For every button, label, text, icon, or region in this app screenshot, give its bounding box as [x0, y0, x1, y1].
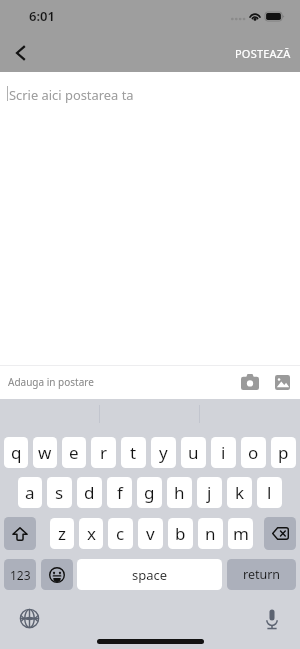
staticText: m	[233, 522, 249, 545]
button[interactable]: l	[257, 477, 282, 508]
staticText: 6:01	[29, 7, 55, 25]
staticText: 123	[10, 567, 31, 583]
staticText: f	[117, 481, 123, 504]
button[interactable]: f	[107, 477, 132, 508]
button[interactable]: Shift	[4, 517, 36, 550]
staticText: return	[243, 566, 281, 583]
staticText: k	[235, 481, 245, 504]
staticText: POSTEAZĂ	[235, 46, 291, 61]
button[interactable]: g	[137, 477, 162, 508]
staticText: a	[25, 481, 35, 504]
button[interactable]: c	[108, 518, 133, 549]
staticText: r	[100, 441, 108, 464]
button[interactable]: z	[50, 518, 74, 549]
staticText: u	[188, 441, 199, 464]
staticText: d	[84, 481, 95, 504]
button[interactable]: Camera	[240, 373, 260, 391]
button[interactable]: u	[181, 437, 206, 468]
button[interactable]: m	[228, 518, 253, 549]
button[interactable]: x	[79, 518, 103, 549]
staticText: y	[159, 441, 168, 464]
button[interactable]: h	[167, 477, 192, 508]
staticText: n	[205, 522, 216, 545]
staticText: i	[221, 441, 226, 464]
staticText: g	[144, 481, 155, 504]
button[interactable]: s	[47, 477, 72, 508]
staticText: t	[130, 441, 137, 464]
button[interactable]: a	[18, 477, 42, 508]
staticText: h	[174, 481, 185, 504]
button[interactable]: Dictate	[261, 608, 283, 630]
staticText: e	[69, 441, 79, 464]
staticText: w	[38, 441, 52, 464]
button[interactable]: Photo	[274, 373, 290, 391]
staticText: j	[207, 481, 212, 504]
staticText: Adauga in postare	[8, 375, 94, 389]
button[interactable]: 123	[4, 559, 36, 590]
staticText: x	[87, 522, 96, 545]
staticText: o	[248, 441, 259, 464]
button[interactable]: Backspace	[264, 517, 296, 550]
button[interactable]: space	[77, 559, 222, 590]
button[interactable]: r	[91, 437, 116, 468]
staticText: space	[132, 566, 168, 584]
staticText: p	[278, 441, 289, 464]
button[interactable]: Back	[0, 34, 40, 72]
button[interactable]: n	[198, 518, 223, 549]
button[interactable]: Change keyboard	[19, 608, 40, 629]
button[interactable]: d	[77, 477, 102, 508]
staticText: l	[267, 481, 272, 504]
staticText: z	[58, 522, 66, 545]
button[interactable]: o	[241, 437, 266, 468]
button[interactable]: return	[227, 559, 296, 590]
staticText: b	[175, 522, 186, 545]
button[interactable]: q	[4, 437, 28, 468]
staticText: c	[116, 522, 125, 545]
button[interactable]: b	[168, 518, 193, 549]
button[interactable]: i	[211, 437, 236, 468]
button[interactable]: POSTEAZĂ	[221, 38, 300, 69]
staticText: v	[146, 522, 155, 545]
staticText: q	[11, 441, 22, 464]
button[interactable]: j	[197, 477, 222, 508]
staticText: s	[55, 481, 64, 504]
button[interactable]: t	[121, 437, 146, 468]
button[interactable]: p	[271, 437, 296, 468]
button[interactable]: v	[138, 518, 163, 549]
staticText: Scrie aici postarea ta	[9, 86, 134, 104]
button[interactable]: Emoji	[41, 559, 73, 590]
button[interactable]: e	[62, 437, 86, 468]
button[interactable]: k	[227, 477, 252, 508]
button[interactable]: w	[33, 437, 57, 468]
button[interactable]: y	[151, 437, 176, 468]
